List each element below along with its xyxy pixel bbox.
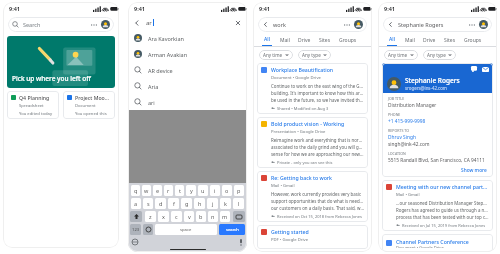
button[interactable]: w (142, 185, 151, 196)
button[interactable]: Q4 Planning (7, 91, 59, 119)
button[interactable]: i (210, 185, 220, 196)
button[interactable]: j (207, 198, 218, 209)
button[interactable]: t (175, 185, 184, 196)
button[interactable]: Calend (361, 37, 372, 46)
button[interactable]: Drive (419, 37, 440, 46)
button[interactable]: z (145, 211, 156, 222)
staticText: 9:41 (259, 5, 270, 12)
button[interactable]: Re: Getting back to work (257, 171, 368, 222)
button[interactable]: s (143, 198, 153, 209)
button[interactable]: Calend (486, 37, 497, 46)
button[interactable]: r (164, 185, 173, 196)
button[interactable]: Sites (315, 37, 335, 46)
staticText: Aria (148, 83, 159, 90)
staticText: Document (75, 103, 96, 109)
button[interactable]: Any type (423, 50, 456, 60)
button[interactable]: p (234, 185, 244, 196)
button[interactable]: Aria (128, 78, 247, 94)
button[interactable]: Back (262, 21, 269, 28)
button[interactable]: Mail (401, 37, 419, 46)
staticText: Received on Oct 15, 2018 from Rebecca Jo… (277, 214, 362, 219)
button[interactable]: Any time (384, 50, 418, 60)
button[interactable]: q (131, 185, 140, 196)
button[interactable]: Back (133, 19, 141, 27)
button[interactable]: Voice input (239, 239, 243, 246)
button[interactable]: Back (258, 17, 367, 32)
button[interactable] (130, 211, 142, 222)
button[interactable]: h (194, 198, 205, 209)
button[interactable]: Workplace Beautification (257, 63, 368, 114)
button[interactable]: Account (101, 20, 110, 29)
button[interactable]: 123 (130, 224, 141, 235)
button[interactable]: Sites (440, 37, 460, 46)
staticText: our customers on a daily basis. That sai… (271, 205, 364, 211)
staticText: AR device (148, 67, 173, 74)
button[interactable]: Channel Partners Conference (382, 234, 493, 252)
button[interactable]: Meeting with our new channel partners (382, 180, 493, 231)
button[interactable]: Any time (259, 50, 293, 60)
button[interactable]: m (220, 211, 230, 222)
staticText: support opportunities that do what is ne… (271, 198, 364, 204)
staticText: Any type (302, 52, 321, 58)
button[interactable]: Drive (294, 37, 315, 46)
staticText: Stephanie Rogers (398, 21, 444, 28)
button[interactable]: All (383, 36, 401, 46)
button[interactable]: Clear (234, 19, 242, 27)
button[interactable]: space (155, 224, 217, 235)
button[interactable]: a (131, 198, 141, 209)
button[interactable]: d (155, 198, 166, 209)
button[interactable]: Chat (471, 66, 477, 72)
staticText: Drive (298, 37, 311, 44)
button[interactable]: Back (383, 17, 492, 32)
staticText: Groups (339, 37, 357, 44)
staticText: JOB TITLE (388, 96, 405, 101)
button[interactable]: Search (8, 17, 114, 32)
staticText: search (226, 227, 239, 233)
button[interactable]: k (220, 198, 231, 209)
button[interactable]: x (158, 211, 169, 222)
button[interactable]: AR device (128, 62, 247, 78)
staticText: e (156, 187, 160, 194)
button[interactable]: b (196, 211, 206, 222)
button[interactable]: Arman Avakian (128, 46, 247, 62)
button[interactable]: v (184, 211, 194, 222)
button[interactable]: g (181, 198, 192, 209)
button[interactable]: Chat (382, 63, 493, 177)
button[interactable]: y (186, 185, 196, 196)
button[interactable]: Account (354, 20, 363, 29)
button[interactable]: Project Moonsh (63, 91, 115, 119)
button[interactable] (143, 224, 153, 235)
button[interactable]: Any type (298, 50, 331, 60)
button[interactable]: Email (482, 67, 489, 72)
staticText: PDF • Google Drive (271, 237, 309, 243)
button[interactable]: c (171, 211, 182, 222)
button[interactable]: Groups (335, 37, 361, 46)
staticText: building. It's important to know how thi… (271, 90, 364, 96)
button[interactable]: f (168, 198, 179, 209)
button[interactable]: o (222, 185, 232, 196)
staticText: t (179, 187, 181, 194)
staticText: associated to the daily grind and you wi… (271, 144, 364, 150)
button[interactable]: Back (387, 21, 394, 28)
button[interactable]: Bold product vision - Working (257, 117, 368, 168)
button[interactable]: Groups (460, 37, 486, 46)
staticText: Any time (388, 52, 408, 58)
button[interactable] (233, 211, 245, 222)
button[interactable]: ari (128, 94, 247, 110)
button[interactable]: u (198, 185, 208, 196)
button[interactable]: Pick up where you left off (7, 36, 115, 88)
button[interactable]: Emoji (132, 239, 138, 245)
staticText: Rogers has agreed to guide us through a … (396, 207, 489, 213)
button[interactable]: l (233, 198, 244, 209)
button[interactable]: All (258, 36, 276, 46)
button[interactable]: Mail (276, 37, 294, 46)
button[interactable]: e (153, 185, 162, 196)
button[interactable]: Account (479, 20, 488, 29)
button[interactable]: Show more (388, 167, 487, 174)
button[interactable]: search (219, 224, 245, 235)
button[interactable]: Getting started (257, 225, 368, 249)
staticText: work (273, 21, 286, 28)
button[interactable]: Ara Kavorkian (128, 30, 247, 46)
staticText: Arman Avakian (148, 51, 188, 58)
button[interactable]: n (208, 211, 218, 222)
